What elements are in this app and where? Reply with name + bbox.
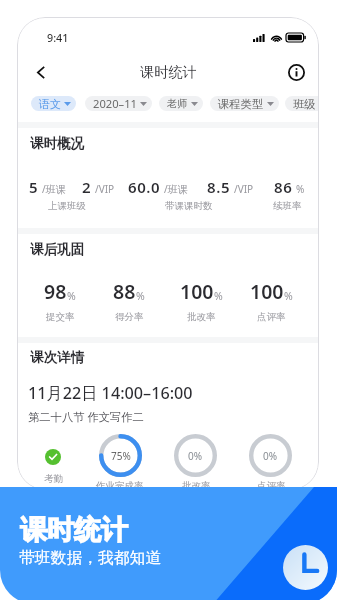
button[interactable]: Attendance ok: [45, 449, 61, 465]
button[interactable]: Back: [25, 56, 57, 88]
button[interactable]: Info: [283, 59, 309, 85]
staticText: /VIP: [95, 182, 115, 196]
staticText: %: [67, 289, 76, 303]
staticText: 点评率: [257, 311, 286, 323]
staticText: 课程类型: [218, 97, 264, 111]
staticText: %: [136, 289, 145, 303]
button[interactable]: Clock: [283, 545, 328, 590]
button[interactable]: 老师: [159, 96, 203, 111]
staticText: 8.5: [207, 177, 231, 197]
staticText: 5: [29, 177, 39, 197]
staticText: 课时统计: [140, 63, 197, 81]
staticText: %: [214, 289, 223, 303]
staticText: 考勤: [44, 473, 63, 485]
staticText: /VIP: [234, 182, 254, 196]
staticText: 课后巩固: [30, 241, 84, 258]
staticText: 75%: [111, 449, 131, 463]
staticText: 课时统计: [20, 513, 128, 547]
staticText: 老师: [167, 97, 188, 110]
staticText: 2020–11: [93, 96, 137, 111]
staticText: 批改率: [187, 311, 216, 323]
staticText: 作业完成率: [96, 480, 144, 490]
staticText: /班课: [164, 182, 188, 196]
staticText: 9:41: [47, 30, 69, 45]
staticText: /班课: [42, 182, 66, 196]
staticText: 提交率: [46, 311, 75, 323]
button[interactable]: 课程类型: [210, 96, 279, 111]
staticText: 续班率: [273, 200, 302, 212]
staticText: 语文: [39, 97, 61, 111]
staticText: 点评率: [257, 480, 286, 490]
staticText: 上课班级: [48, 200, 86, 212]
staticText: 班级: [293, 97, 316, 111]
staticText: 2: [82, 177, 92, 197]
button[interactable]: 2020–11: [85, 96, 152, 111]
staticText: %: [296, 182, 305, 196]
staticText: 11月22日 14:00–16:00: [28, 382, 193, 404]
staticText: 第二十八节 作文写作二: [28, 409, 144, 424]
staticText: %: [284, 289, 293, 303]
staticText: 86: [274, 177, 293, 197]
staticText: 课时概况: [30, 135, 84, 152]
staticText: 批改率: [182, 480, 211, 490]
staticText: 88: [113, 278, 136, 305]
button[interactable]: 语文: [31, 96, 76, 111]
staticText: 带课课时数: [165, 200, 213, 212]
staticText: 60.0: [128, 177, 161, 197]
staticText: 0%: [263, 449, 278, 463]
staticText: 100: [180, 278, 214, 305]
staticText: 得分率: [115, 311, 144, 323]
staticText: 0%: [188, 449, 203, 463]
staticText: 课次详情: [30, 349, 84, 366]
staticText: 带班数据，我都知道: [19, 548, 162, 568]
button[interactable]: 班级: [285, 96, 319, 111]
staticText: 100: [250, 278, 284, 305]
staticText: 98: [44, 278, 67, 305]
